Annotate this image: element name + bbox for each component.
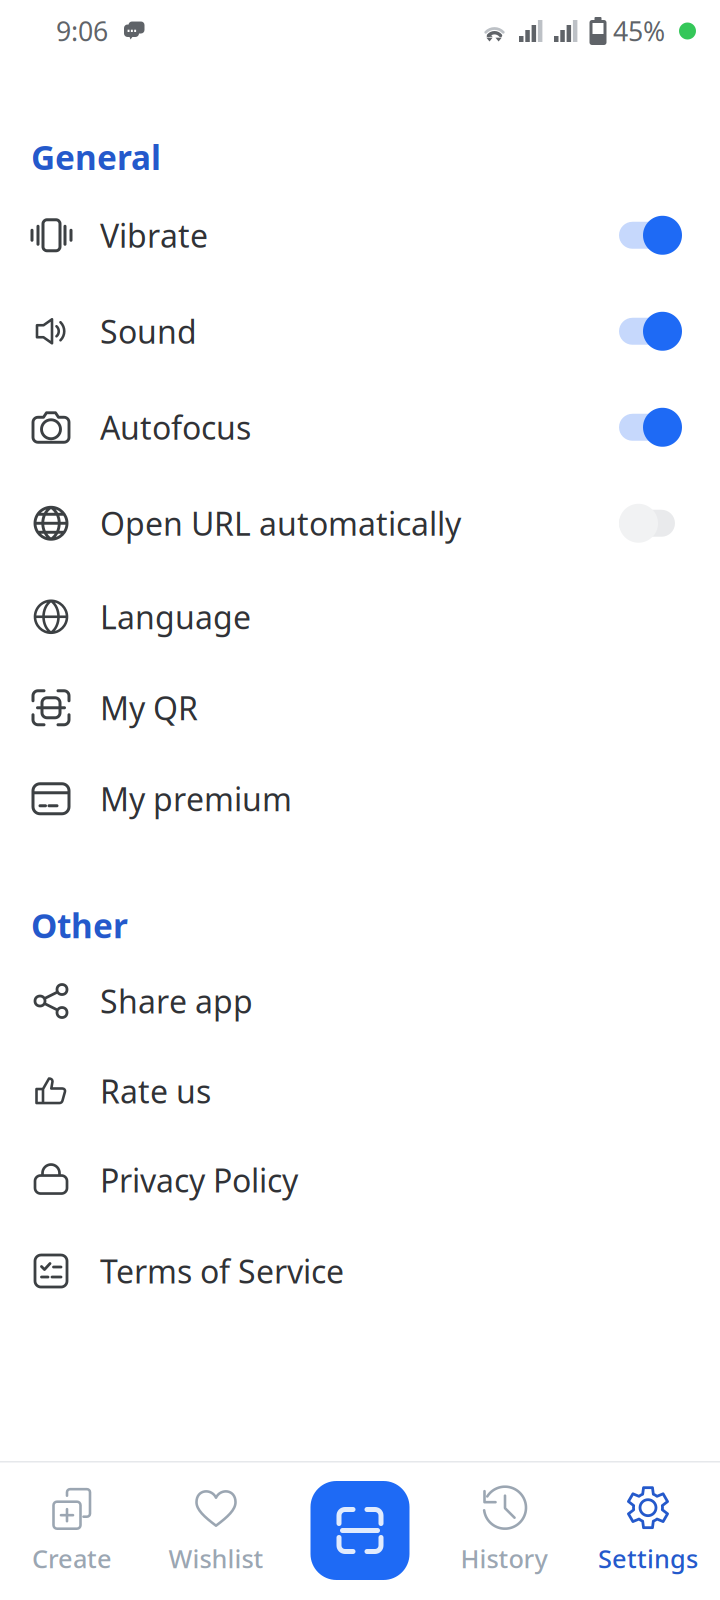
button[interactable]: My premium <box>0 753 720 844</box>
button[interactable]: Rate us <box>0 1047 720 1134</box>
staticText: 45% <box>613 13 665 49</box>
button[interactable]: Settings <box>576 1461 720 1600</box>
staticText: Vibrate <box>100 214 208 256</box>
button[interactable]: My QR <box>0 662 720 753</box>
staticText: Rate us <box>100 1070 211 1112</box>
button[interactable]: Create <box>0 1461 144 1600</box>
staticText: Language <box>100 595 251 638</box>
staticText: Sound <box>100 310 197 352</box>
staticText: My premium <box>100 777 292 820</box>
staticText: Autofocus <box>100 406 251 448</box>
button[interactable]: Open URL automatically <box>0 475 720 571</box>
staticText: Other <box>31 903 128 948</box>
staticText: Privacy Policy <box>100 1159 298 1201</box>
staticText: Open URL automatically <box>100 502 461 544</box>
staticText: Share app <box>100 980 253 1022</box>
button[interactable]: Sound <box>0 283 720 379</box>
staticText: History <box>460 1542 547 1575</box>
button[interactable]: Vibrate <box>0 187 720 283</box>
staticText: Settings <box>598 1542 698 1575</box>
staticText: General <box>31 135 161 179</box>
staticText: My QR <box>100 686 198 729</box>
staticText: Create <box>32 1542 112 1575</box>
button[interactable]: Autofocus <box>0 379 720 475</box>
button[interactable]: Wishlist <box>144 1461 288 1600</box>
button[interactable]: Terms of Service <box>0 1225 720 1316</box>
button[interactable]: Share app <box>0 954 720 1047</box>
staticText: Wishlist <box>168 1542 263 1575</box>
staticText: 9:06 <box>56 13 108 49</box>
button[interactable]: History <box>432 1461 576 1600</box>
button[interactable]: Scan <box>288 1461 432 1600</box>
staticText: Terms of Service <box>100 1250 344 1292</box>
button[interactable]: Privacy Policy <box>0 1134 720 1225</box>
button[interactable]: Language <box>0 571 720 662</box>
